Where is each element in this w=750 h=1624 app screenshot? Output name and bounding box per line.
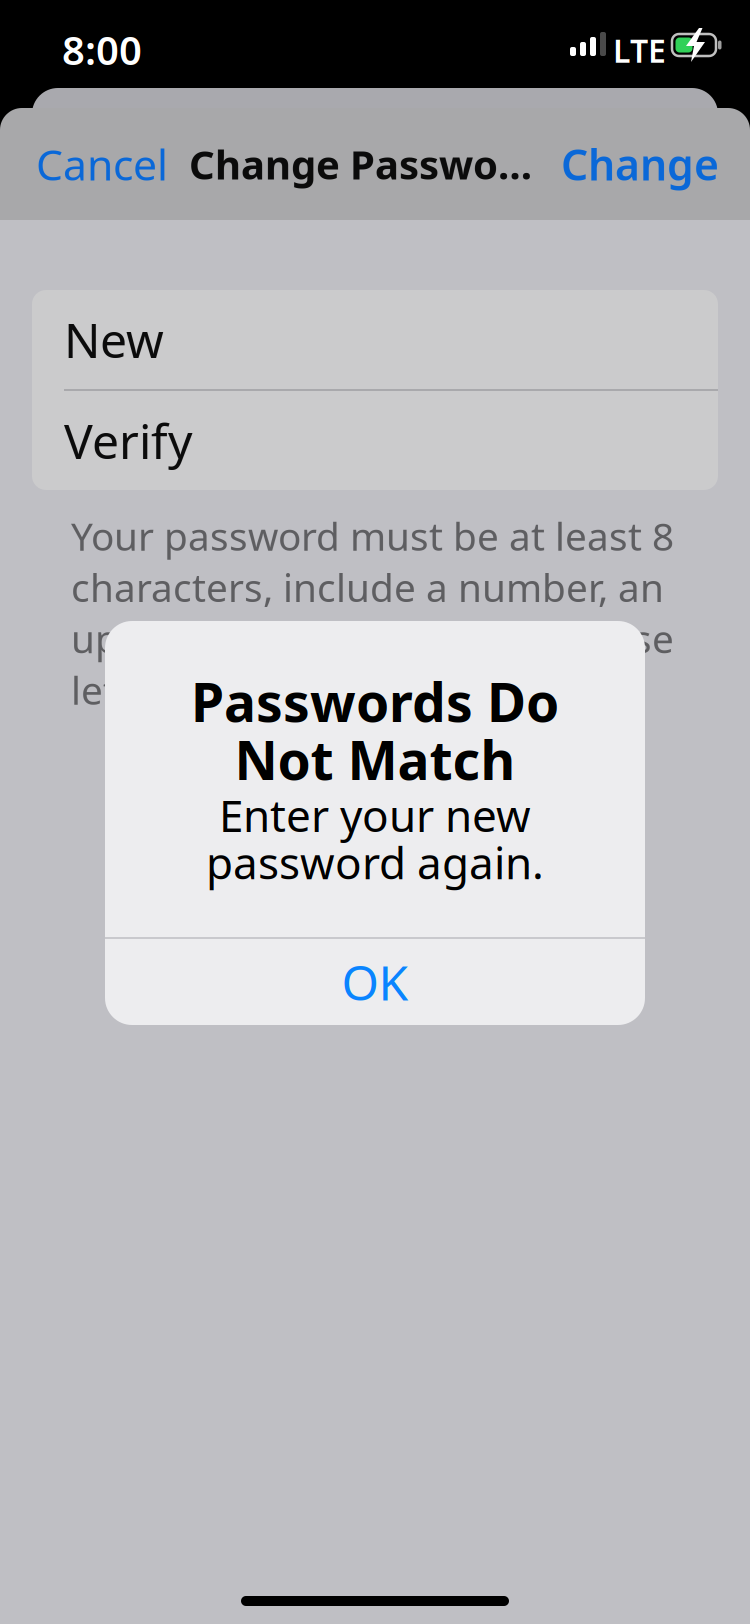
staticText: LTE [613, 29, 666, 71]
staticText: Cancel [36, 136, 168, 192]
button[interactable]: New [32, 290, 718, 389]
staticText: password again. [206, 833, 544, 891]
staticText: Verify [64, 409, 192, 472]
staticText: Change [561, 136, 719, 192]
staticText: 8:00 [62, 23, 142, 76]
staticText: Not Match [234, 724, 515, 795]
button[interactable]: Change [559, 108, 719, 220]
button[interactable]: Cancel [36, 108, 168, 220]
button[interactable]: Verify [32, 391, 718, 490]
staticText: Enter your new [219, 786, 531, 844]
staticText: Your password must be at least 8 charact… [71, 510, 674, 715]
staticText: New [64, 308, 164, 371]
staticText: Change Passwo… [189, 137, 532, 190]
staticText: Passwords Do [191, 666, 559, 737]
button[interactable]: OK [105, 939, 645, 1025]
staticText: OK [341, 950, 408, 1014]
